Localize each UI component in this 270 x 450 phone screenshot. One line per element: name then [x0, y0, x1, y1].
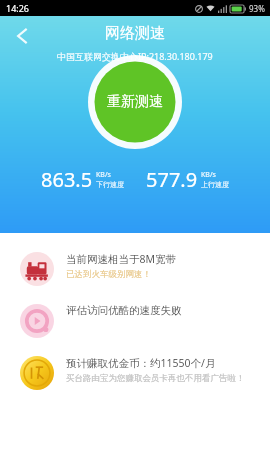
- button[interactable]: 当前网速相当于8M宽带: [0, 243, 270, 295]
- staticText: KB/s: [201, 170, 216, 180]
- staticText: 买台路由宝为您赚取会员卡再也不用看广告啦！: [66, 373, 254, 384]
- staticText: 中国互联网交换中心IP:218.30.180.179: [57, 50, 213, 62]
- button[interactable]: 重新测速: [87, 54, 183, 150]
- button[interactable]: 评估访问优酷的速度失败: [0, 295, 270, 347]
- staticText: 当前网速相当于8M宽带: [66, 252, 177, 266]
- staticText: 已达到火车级别网速！: [66, 269, 254, 280]
- staticText: 预计赚取优金币：约11550个/月: [66, 356, 216, 370]
- staticText: 下行速度: [96, 180, 124, 189]
- button[interactable]: Back: [3, 19, 37, 53]
- staticText: 93%: [249, 3, 265, 14]
- button[interactable]: 预计赚取优金币：约11550个/月: [0, 347, 270, 399]
- staticText: KB/s: [96, 170, 111, 180]
- staticText: 评估访问优酷的速度失败: [66, 304, 182, 317]
- staticText: 重新测速: [107, 93, 163, 111]
- staticText: 863.5: [41, 166, 93, 193]
- staticText: 577.9: [146, 166, 198, 193]
- staticText: 14:26: [6, 2, 30, 14]
- staticText: 上行速度: [201, 180, 229, 189]
- staticText: 网络测速: [105, 24, 165, 43]
